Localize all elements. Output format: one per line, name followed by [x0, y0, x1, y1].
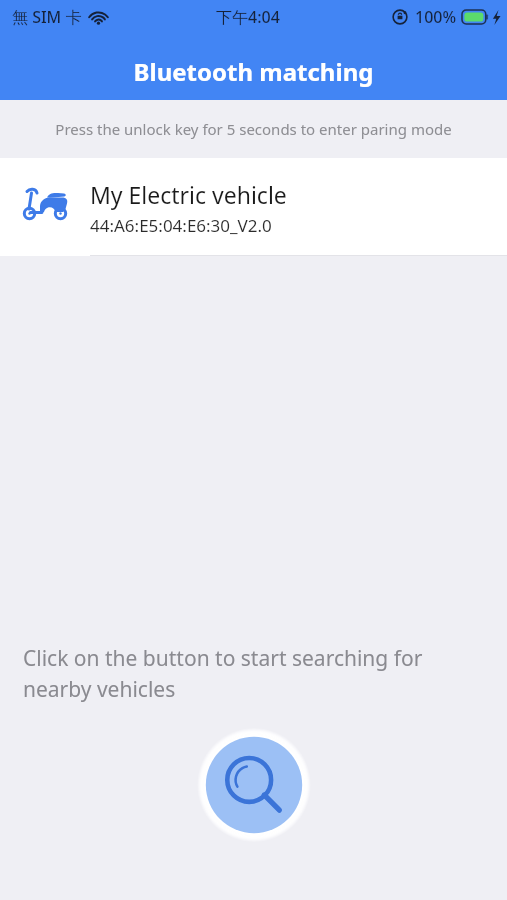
- staticText: 44:A6:E5:04:E6:30_V2.0: [90, 214, 272, 237]
- staticText: 下午4:04: [216, 6, 280, 28]
- button[interactable]: My Electric vehicle: [0, 158, 507, 256]
- staticText: 100%: [415, 6, 457, 28]
- staticText: Click on the button to start searching f…: [23, 644, 477, 703]
- button[interactable]: Search for nearby vehicles: [197, 728, 311, 842]
- staticText: Bluetooth matching: [0, 55, 507, 88]
- staticText: 無 SIM 卡: [12, 6, 82, 28]
- staticText: Press the unlock key for 5 seconds to en…: [55, 119, 452, 139]
- staticText: My Electric vehicle: [90, 179, 287, 210]
